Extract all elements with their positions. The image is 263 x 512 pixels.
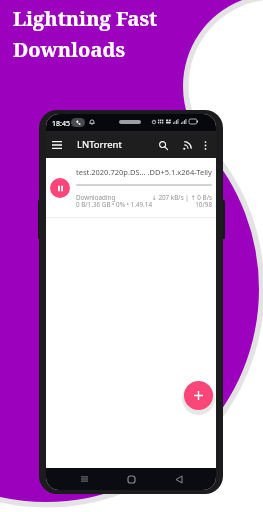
button[interactable]: Pause download <box>46 158 216 219</box>
staticText: 10/98 <box>152 200 212 209</box>
button[interactable]: Back <box>169 469 189 489</box>
staticText: 0 B/1.36 GB • 0% • 1.49.14 <box>76 200 152 209</box>
button[interactable]: Add torrent <box>184 381 213 410</box>
button[interactable]: Recents <box>74 469 94 489</box>
button[interactable]: RSS feeds <box>178 136 196 154</box>
button[interactable]: More options <box>196 136 214 154</box>
staticText: Lightning Fast <box>13 5 158 32</box>
staticText: test.2020.720p.DS... .DD+5.1.x264-Telly <box>76 167 212 177</box>
staticText: Downloading <box>76 193 116 202</box>
staticText: ↓ 207 kB/s | ↑ 0 B/s <box>116 193 212 202</box>
button[interactable]: Home <box>121 469 141 489</box>
button[interactable]: Search <box>154 136 172 154</box>
button[interactable]: Pause download <box>50 178 70 198</box>
staticText: 18:45 <box>52 119 70 129</box>
staticText: Downloads <box>13 36 125 63</box>
staticText: LNTorrent <box>77 138 122 151</box>
button[interactable]: Open navigation menu <box>48 136 66 154</box>
